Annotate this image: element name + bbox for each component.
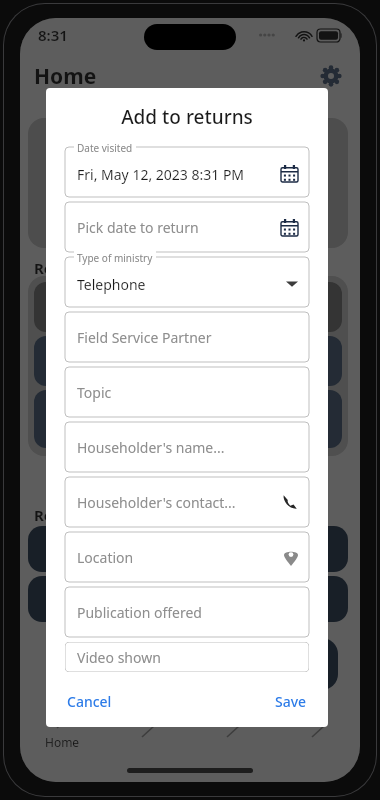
staticText: Telephone	[77, 275, 146, 294]
button[interactable]: Home	[20, 708, 105, 754]
button[interactable]: Publication offered	[65, 587, 309, 637]
button[interactable]: Householder's name...	[65, 422, 309, 472]
staticText: Date visited	[77, 141, 133, 155]
other: Pick date	[281, 219, 298, 236]
staticText: Home	[34, 62, 97, 91]
other: Expand	[286, 280, 298, 288]
other: Pick date	[281, 165, 298, 182]
button[interactable]: Topic	[65, 367, 309, 417]
staticText: Save	[275, 692, 307, 711]
staticText: Householder's contact...	[77, 493, 236, 512]
staticText: 8:31	[38, 25, 68, 45]
button[interactable]: Type of ministry	[65, 257, 309, 307]
button[interactable]: Pick date to return	[65, 202, 309, 252]
button[interactable]	[190, 708, 275, 754]
staticText: Video shown	[77, 648, 161, 667]
staticText: Home	[45, 734, 80, 750]
button[interactable]	[105, 708, 190, 754]
other: Location	[284, 549, 298, 566]
button[interactable]	[275, 708, 360, 754]
button[interactable]: Field Service Partner	[65, 312, 309, 362]
staticText: Householder's name...	[77, 438, 225, 457]
button[interactable]: Save	[273, 686, 309, 717]
staticText: Type of ministry	[77, 251, 153, 265]
other: Call	[282, 494, 298, 510]
staticText: Field Service Partner	[77, 328, 212, 347]
staticText: Cancel	[67, 692, 112, 711]
staticText: Re	[34, 505, 53, 525]
button[interactable]: Settings	[316, 61, 346, 91]
staticText: Location	[77, 548, 134, 567]
button[interactable]: Location	[65, 532, 309, 582]
staticText: Fri, May 12, 2023 8:31 PM	[77, 165, 245, 184]
button[interactable]: Cancel	[65, 686, 114, 717]
staticText: Publication offered	[77, 603, 202, 622]
button[interactable]: Date visited	[65, 147, 309, 197]
button[interactable]: Householder's contact...	[65, 477, 309, 527]
button[interactable]: Video shown	[65, 642, 309, 672]
staticText: Re	[34, 258, 53, 278]
staticText: Pick date to return	[77, 218, 199, 237]
staticText: Add to returns	[46, 104, 328, 130]
staticText: Topic	[77, 383, 112, 402]
